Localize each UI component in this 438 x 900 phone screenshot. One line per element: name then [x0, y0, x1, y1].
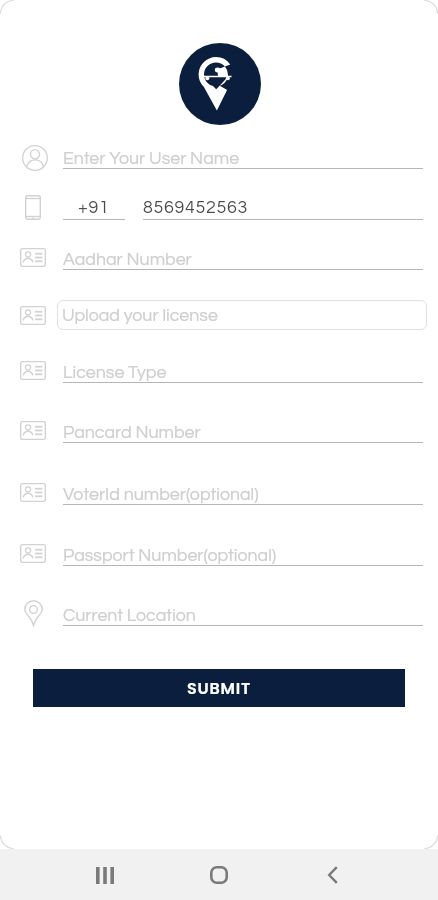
staticText: Pancard Number	[63, 423, 201, 441]
staticText: VoterId number(optional)	[63, 485, 259, 503]
button[interactable]	[0, 354, 438, 384]
staticText: 8569452563	[143, 198, 248, 216]
staticText: +91	[78, 198, 110, 216]
button[interactable]: Back	[309, 851, 357, 899]
staticText: Enter Your User Name	[63, 149, 240, 167]
staticText: Passport Number(optional)	[63, 546, 277, 564]
button[interactable]	[0, 241, 438, 271]
staticText: Aadhar Number	[63, 250, 192, 268]
button[interactable]	[0, 476, 438, 506]
button[interactable]: Upload your license	[57, 300, 427, 330]
button[interactable]	[0, 597, 438, 627]
staticText: Upload your license	[62, 306, 218, 324]
staticText: License Type	[63, 363, 167, 381]
staticText: Current Location	[63, 606, 196, 624]
button[interactable]: Recent apps	[81, 851, 129, 899]
button[interactable]: Home	[195, 851, 243, 899]
button[interactable]	[0, 191, 438, 221]
button[interactable]	[0, 414, 438, 444]
staticText: SUBMIT	[187, 677, 252, 699]
button[interactable]: SUBMIT	[33, 669, 405, 707]
button[interactable]	[0, 537, 438, 567]
button[interactable]	[0, 140, 438, 170]
